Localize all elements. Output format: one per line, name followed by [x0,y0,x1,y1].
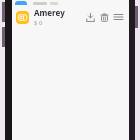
button[interactable] [12,0,129,5]
staticText: Amerey [34,7,65,18]
button[interactable]: Menu [111,10,125,24]
button[interactable]: Delete [97,10,111,24]
staticText: $ 0 [34,19,43,27]
button[interactable]: Amerey [12,5,129,29]
button[interactable]: Download [83,10,97,24]
